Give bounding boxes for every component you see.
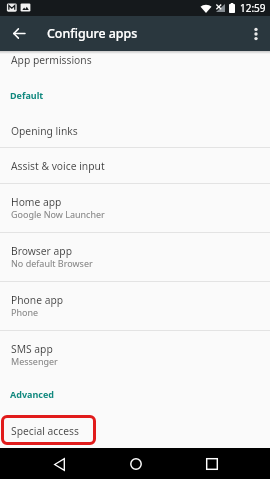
staticText: No default Browser [11,257,93,269]
staticText: 12:59 [240,1,266,15]
button[interactable]: SMS app [0,331,270,379]
staticText: Opening links [11,124,78,138]
staticText: Configure apps [47,25,138,42]
staticText: Browser app [11,244,72,258]
staticText: Messenger [11,355,58,367]
button[interactable]: Home app [0,184,270,232]
staticText: Google Now Launcher [11,208,105,220]
staticText: Phone [11,306,39,318]
staticText: App permissions [11,53,92,67]
button[interactable]: Back [38,453,81,475]
button[interactable]: Opening links [0,113,270,147]
staticText: Default [10,89,44,101]
button[interactable]: More options [245,23,267,45]
staticText: Phone app [11,293,64,307]
button[interactable]: Assist & voice input [0,148,270,183]
staticText: Assist & voice input [11,159,105,173]
staticText: Advanced [10,388,55,400]
button[interactable]: Phone app [0,282,270,330]
button[interactable]: Recent apps [190,453,233,475]
button[interactable]: Browser app [0,233,270,281]
staticText: SMS app [11,342,53,356]
staticText: Home app [11,195,62,209]
button[interactable]: Navigate up [7,22,30,45]
button[interactable]: Special access [0,414,270,443]
staticText: Special access [11,424,79,438]
button[interactable]: Home [114,453,157,475]
button[interactable]: App permissions [0,44,270,78]
